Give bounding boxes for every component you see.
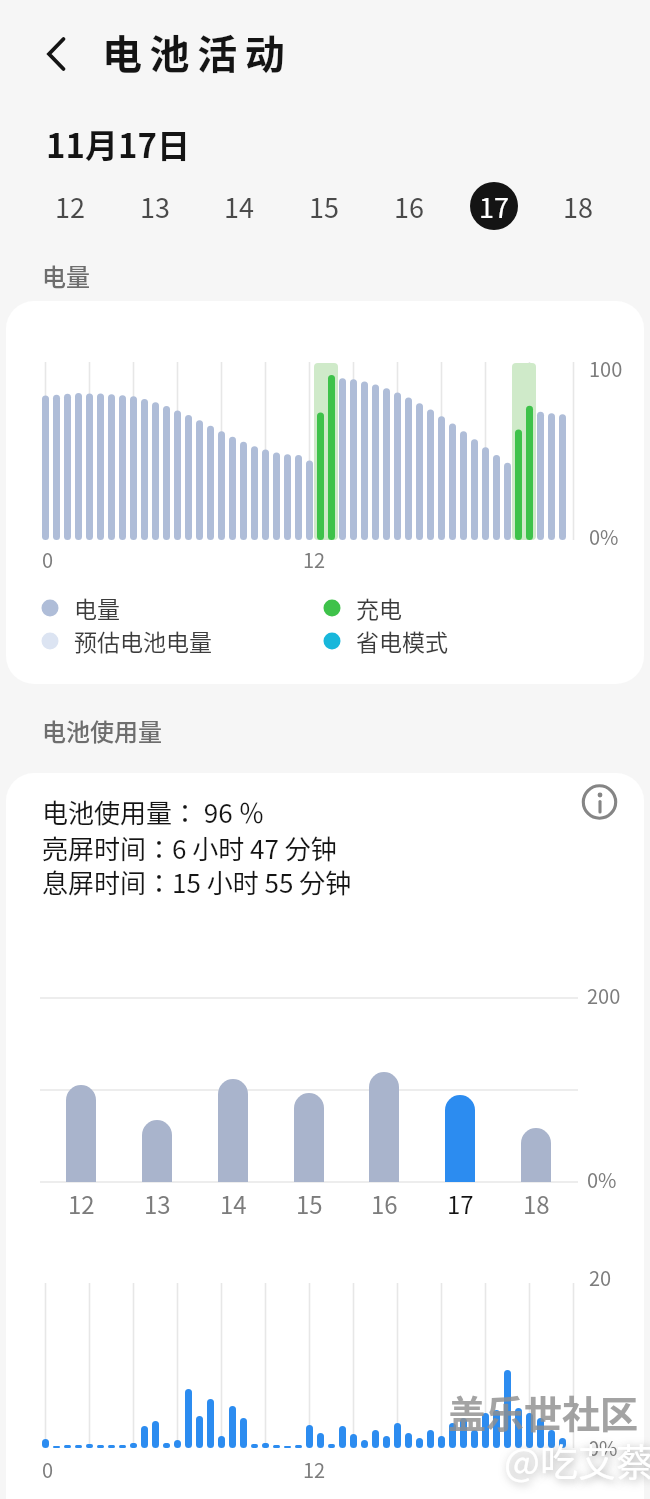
button[interactable]: 17 (468, 180, 520, 232)
staticText: 预估电池电量 (74, 624, 212, 657)
button[interactable] (36, 36, 78, 78)
staticText: 亮屏时间：6 小时 47 分钟 (42, 829, 337, 867)
staticText: 0% (589, 522, 619, 551)
staticText: 100 (589, 354, 623, 383)
staticText: 15 (296, 1186, 323, 1221)
staticText: 12 (303, 545, 326, 574)
staticText: 20 (589, 1263, 612, 1292)
button[interactable]: 18 (552, 180, 604, 232)
staticText: 16 (371, 1186, 398, 1221)
staticText: 11月17日 (46, 120, 190, 168)
staticText: 电池使用量： 96 ％ (42, 793, 265, 831)
staticText: 省电模式 (356, 624, 448, 657)
staticText: 15 (309, 187, 339, 226)
staticText: 17 (447, 1186, 474, 1221)
staticText: @吃艾蔡 (504, 1432, 650, 1487)
staticText: 电池活动 (102, 23, 293, 81)
staticText: 电量 (42, 258, 90, 293)
staticText: 12 (303, 1455, 326, 1484)
staticText: 0% (588, 1433, 618, 1462)
staticText: 盖乐世社区 (448, 1384, 639, 1439)
button[interactable] (6, 773, 644, 1499)
staticText: 18 (563, 187, 593, 226)
staticText: 17 (479, 187, 509, 226)
staticText: 200 (587, 981, 621, 1010)
button[interactable]: 14 (213, 180, 265, 232)
button[interactable]: 16 (383, 180, 435, 232)
staticText: 0% (587, 1165, 617, 1194)
staticText: 13 (144, 1186, 171, 1221)
staticText: 电量 (74, 591, 120, 624)
staticText: 18 (523, 1186, 550, 1221)
staticText: 电池使用量 (42, 713, 162, 748)
staticText: 0 (42, 1455, 54, 1484)
staticText: 充电 (356, 591, 402, 624)
staticText: 0 (42, 545, 54, 574)
staticText: 16 (394, 187, 424, 226)
button[interactable] (6, 301, 644, 684)
staticText: 14 (220, 1186, 247, 1221)
staticText: 13 (140, 187, 170, 226)
button[interactable]: 13 (129, 180, 181, 232)
staticText: 12 (68, 1186, 95, 1221)
button[interactable]: 15 (298, 180, 350, 232)
button[interactable] (580, 785, 620, 825)
staticText: 14 (224, 187, 254, 226)
staticText: 息屏时间：15 小时 55 分钟 (42, 863, 352, 901)
button[interactable]: 12 (44, 180, 96, 232)
staticText: 12 (55, 187, 85, 226)
